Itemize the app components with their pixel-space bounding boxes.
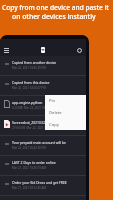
staticText: 219.66 KB Mar 22, 2021 03:40 PM: [12, 126, 57, 130]
button[interactable]: Copied from this device: [0, 76, 86, 90]
button[interactable]: Refresh: [73, 45, 86, 55]
staticText: on other devices instantly: [12, 12, 96, 21]
staticText: Mar 22, 2021 06:42:06 PM: [12, 146, 46, 150]
button[interactable]: Order your Eid Dress and get FREE: [0, 176, 86, 190]
staticText: Copied from another device: [12, 60, 57, 65]
staticText: Mar 21, 2021 10:30:19 AM: [12, 166, 46, 170]
staticText: Copy: [49, 122, 59, 128]
button[interactable]: Copy: [45, 119, 86, 130]
staticText: LAST 2 Days to order online: [12, 160, 56, 165]
staticText: Pin: [49, 98, 56, 104]
staticText: Mar 21, 2021 09:12:45 AM: [12, 186, 46, 190]
staticText: 6.23 MB Mar 22, 2021 03:41 PM: [12, 106, 54, 110]
staticText: Copied from this device: [12, 80, 50, 85]
button[interactable]: Pin: [45, 95, 86, 107]
button[interactable]: app-engine-python: [0, 96, 86, 110]
staticText: Mar 22, 2021 04:04:07 PM: [12, 86, 46, 90]
staticText: Screenshot_20210322: [12, 120, 47, 125]
button[interactable]: Delete: [45, 107, 86, 119]
staticText: Copy from one device and paste it: [2, 3, 109, 12]
staticText: Delete: [49, 110, 62, 116]
staticText: Your prepaid main account will be: [12, 140, 66, 145]
staticText: app-engine-python: [12, 100, 43, 105]
button[interactable]: Copied from another device: [0, 56, 86, 70]
staticText: Order your Eid Dress and get FREE: [12, 180, 67, 185]
button[interactable]: Screenshot_20210322: [0, 116, 86, 130]
button[interactable]: Menu: [0, 45, 13, 55]
button[interactable]: Your prepaid main account will be: [0, 136, 86, 150]
button[interactable]: LAST 2 Days to order online: [0, 156, 86, 170]
staticText: Mar 22, 2021 03:45:05 PM: [12, 66, 46, 70]
